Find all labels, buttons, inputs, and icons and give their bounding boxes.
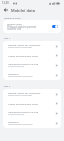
staticText: 12:30	[2, 1, 9, 5]
staticText: Operátor	[8, 72, 19, 75]
staticText: 4G (doporučeno)	[8, 113, 24, 116]
button[interactable]: Operátor	[3, 70, 61, 80]
staticText: Mobilní data	[7, 22, 22, 25]
button[interactable]: Back	[2, 6, 10, 14]
staticText: Upřednostňovaný typ sítě	[8, 110, 39, 113]
staticText: Povolit data při roamingu	[8, 46, 32, 49]
button[interactable]: Datové služby při roamingu	[3, 89, 61, 99]
button[interactable]: Mobile data toggle	[52, 25, 58, 28]
staticText: Upřednostňovaný typ sítě	[8, 62, 39, 65]
staticText: Název přístupového bodu	[8, 102, 39, 105]
staticText: Operátor	[8, 120, 19, 123]
staticText: SIM 2	[4, 85, 11, 88]
staticText: Vybrat síťového operátora	[8, 123, 33, 126]
staticText: MOBILNÍ DATA	[4, 16, 21, 19]
staticText: Datové služby při roamingu	[8, 43, 41, 46]
button[interactable]: Mobilní data	[3, 20, 61, 33]
button[interactable]: Datové služby při roamingu	[3, 41, 61, 51]
staticText: SIM 1	[4, 37, 11, 40]
staticText: Vybrat síťového operátora	[8, 75, 33, 78]
button[interactable]: Název přístupového bodu	[3, 99, 61, 108]
button[interactable]: Upřednostňovaný typ sítě	[3, 108, 61, 118]
staticText: Mobilní data	[11, 8, 35, 13]
button[interactable]: Název přístupového bodu	[3, 51, 61, 60]
staticText: Datové služby při roamingu	[8, 91, 41, 94]
staticText: Povolit data při roamingu	[8, 94, 32, 97]
staticText: Přístup k datům pomocí mobilní sítě	[7, 25, 37, 31]
button[interactable]: Operátor	[3, 118, 61, 128]
button[interactable]: Upřednostňovaný typ sítě	[3, 60, 61, 70]
staticText: Název přístupového bodu	[8, 54, 39, 57]
staticText: 4G (doporučeno)	[8, 65, 24, 68]
